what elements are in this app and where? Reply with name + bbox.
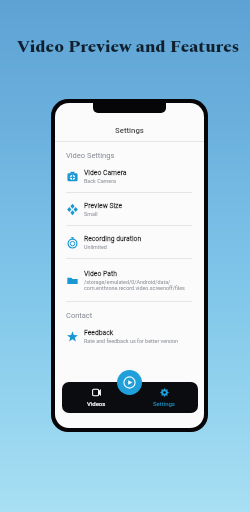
staticText: Back Camera [84, 178, 116, 184]
button[interactable]: Recording duration [55, 226, 204, 258]
staticText: Recording duration [84, 235, 142, 243]
button[interactable]: Settings [130, 382, 198, 413]
staticText: Settings [153, 400, 175, 407]
button[interactable]: Video Path [55, 259, 204, 301]
staticText: /storage/emulated/0/Android/data/ com.en… [84, 279, 185, 291]
staticText: Small [84, 211, 98, 217]
staticText: Video Camera [84, 169, 127, 177]
staticText: Videos [87, 400, 106, 407]
staticText: Video Path [84, 270, 117, 278]
button[interactable]: Record video [117, 370, 142, 395]
staticText: Rate and feedback us for better version [84, 338, 178, 344]
staticText: Preview Size [84, 202, 123, 210]
staticText: Video Preview and Features [3, 34, 250, 60]
button[interactable]: Video Camera [55, 160, 204, 192]
staticText: Feedback [84, 329, 114, 337]
staticText: Video Settings [66, 151, 115, 160]
staticText: Unlimited [84, 244, 107, 250]
staticText: Settings [115, 126, 144, 135]
button[interactable]: Preview Size [55, 193, 204, 225]
button[interactable]: Videos [62, 382, 130, 413]
button[interactable]: Feedback [55, 320, 204, 352]
staticText: Contact [66, 311, 93, 320]
